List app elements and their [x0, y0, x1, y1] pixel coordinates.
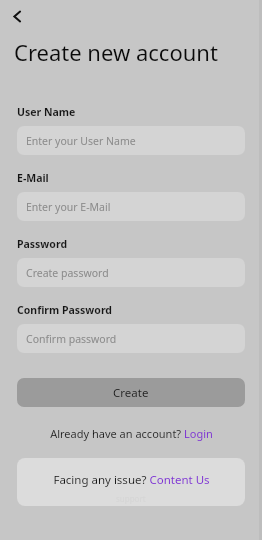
button[interactable]: Back — [4, 3, 30, 29]
staticText: Create password — [26, 266, 109, 280]
staticText: Already have an account? Login — [50, 426, 213, 441]
staticText: Password — [17, 237, 68, 251]
button[interactable]: Confirm password — [17, 324, 245, 353]
staticText: Confirm password — [26, 332, 117, 346]
staticText: E-Mail — [17, 171, 49, 185]
button[interactable]: Enter your User Name — [17, 126, 245, 155]
staticText: Enter your E-Mail — [26, 200, 111, 214]
staticText: Facing any issue? Content Us — [53, 472, 210, 488]
staticText: Confirm Password — [17, 303, 113, 317]
button[interactable]: Create — [17, 378, 245, 407]
button[interactable]: Enter your E-Mail — [17, 192, 245, 221]
staticText: Create new account — [14, 37, 218, 67]
staticText: Create — [113, 385, 149, 401]
button[interactable]: Create password — [17, 258, 245, 287]
staticText: Enter your User Name — [26, 134, 136, 148]
staticText: User Name — [17, 105, 76, 119]
button[interactable]: Already have an account? Login — [17, 426, 245, 441]
button[interactable]: Facing any issue? Content Us — [17, 458, 245, 506]
